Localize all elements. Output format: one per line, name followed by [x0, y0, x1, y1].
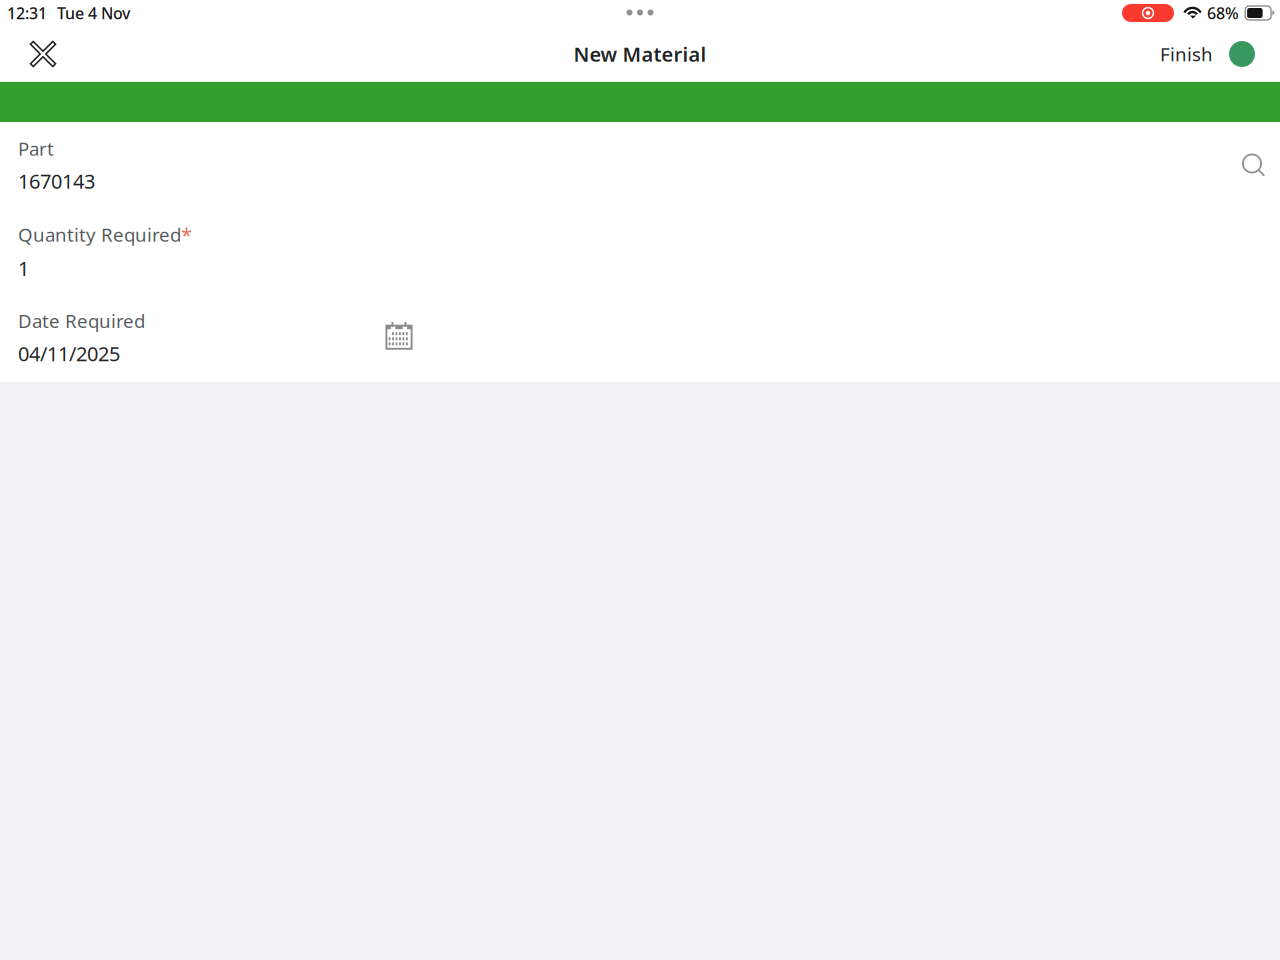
- button[interactable]: Close: [21, 32, 65, 76]
- button[interactable]: Search for part: [1222, 136, 1266, 180]
- staticText: 04/11/2025: [18, 340, 120, 367]
- button[interactable]: Choose date: [380, 308, 416, 344]
- staticText: 1670143: [18, 168, 95, 194]
- staticText: New Material: [573, 41, 706, 67]
- staticText: 1: [18, 255, 29, 281]
- staticText: Quantity Required: [18, 222, 181, 247]
- staticText: Finish: [1160, 42, 1213, 66]
- button[interactable]: Date Required: [18, 308, 380, 367]
- button[interactable]: Part: [18, 136, 95, 194]
- button[interactable]: Quantity Required: [18, 221, 192, 281]
- staticText: Date Required: [18, 308, 145, 333]
- staticText: Part: [18, 136, 54, 161]
- staticText: Tue 4 Nov: [57, 2, 130, 24]
- staticText: *: [181, 221, 192, 248]
- staticText: 12:31: [7, 2, 47, 24]
- button[interactable]: Finish: [1160, 32, 1255, 76]
- staticText: 68%: [1207, 2, 1239, 24]
